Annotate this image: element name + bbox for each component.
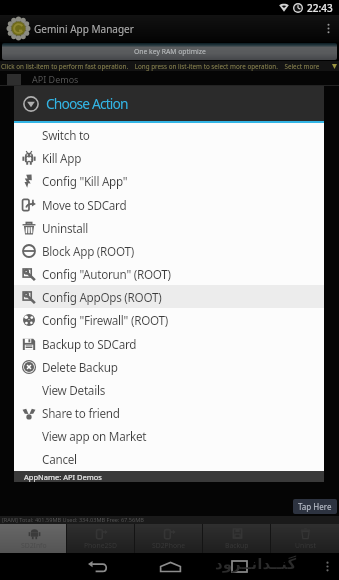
button[interactable]: One key RAM optimize [2,43,337,60]
button[interactable]: Config "Autorun" (ROOT) [14,262,324,285]
staticText: Cancel [42,451,77,467]
staticText: Phone2SD [84,541,118,550]
button[interactable]: Back [75,553,119,580]
button[interactable]: Share to friend [14,401,324,424]
staticText: SD2Info [21,541,47,550]
staticText: [RAM] Total: 401.59MB Used: 334.03MB Fre… [2,516,144,524]
staticText: 22:43 [307,1,333,15]
button[interactable]: Uninstall [14,216,324,239]
staticText: Config AppOps (ROOT) [42,289,162,305]
staticText: AppName: API Demos [24,472,102,482]
staticText: گنــدانــرود [215,555,297,572]
staticText: Choose Action [46,94,128,113]
staticText: One key RAM optimize [134,47,206,56]
staticText: Delete Backup [42,359,118,375]
button[interactable]: Menu [315,553,339,580]
staticText: Config "Firewall" (ROOT) [42,312,169,328]
staticText: View app on Market [42,428,147,444]
button[interactable]: Backup [203,524,271,553]
staticText: Block App (ROOT) [42,243,134,259]
button[interactable]: View Details [14,378,324,401]
staticText: Uninstall [42,220,89,236]
button[interactable]: Uninst [271,524,339,553]
button[interactable]: Delete Backup [14,355,324,378]
button[interactable]: Config "Kill App" [14,169,324,193]
staticText: Uninst [295,541,316,550]
button[interactable]: Switch to [14,123,324,146]
staticText: API Demos [32,73,79,85]
button[interactable]: Home [148,553,192,580]
staticText: Config "Autorun" (ROOT) [42,266,171,282]
staticText: Click on list-item to perform fast opera… [1,62,320,71]
button[interactable]: Kill App [14,146,324,169]
button[interactable]: Recent apps [217,553,261,580]
button[interactable]: Move to SDCard [14,193,324,216]
staticText: Gemini App Manager [34,22,134,36]
button[interactable]: Config AppOps (ROOT) [14,285,324,308]
staticText: Config "Kill App" [42,173,128,189]
button[interactable]: Tap Here [293,499,337,514]
button[interactable]: Cancel [14,447,324,471]
button[interactable]: SD2Phone [135,524,203,553]
button[interactable]: Phone2SD [67,524,135,553]
staticText: Share to friend [42,405,120,421]
button[interactable]: View app on Market [14,424,324,447]
staticText: Tap Here [298,501,332,512]
staticText: Backup to SDCard [42,336,137,352]
button[interactable]: Backup to SDCard [14,332,324,355]
button[interactable]: SD2Info [0,524,67,553]
staticText: SD2Phone [152,541,186,550]
staticText: Move to SDCard [42,197,127,213]
button[interactable]: Config "Firewall" (ROOT) [14,308,324,332]
button[interactable]: More options [317,15,339,42]
staticText: View Details [42,382,106,398]
staticText: Kill App [42,150,82,166]
staticText: Backup [225,541,249,550]
staticText: Switch to [42,127,90,143]
button[interactable]: Block App (ROOT) [14,239,324,262]
